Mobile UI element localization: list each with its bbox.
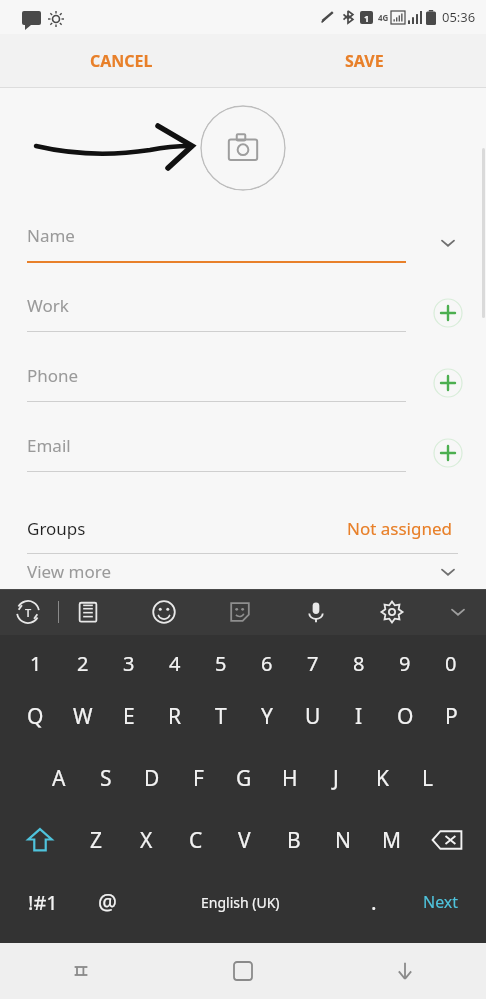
staticText: V	[238, 826, 251, 855]
button[interactable]: View more	[0, 554, 486, 589]
button[interactable]: 8	[336, 641, 382, 685]
button[interactable]: CANCEL	[0, 34, 243, 88]
button[interactable]: Groups	[0, 488, 486, 554]
button[interactable]: S	[82, 747, 129, 809]
button[interactable]: English (UK)	[136, 871, 345, 933]
button[interactable]: C	[171, 809, 220, 871]
button[interactable]: A	[35, 747, 82, 809]
button[interactable]: Phone	[0, 348, 486, 418]
button[interactable]: Stickers	[218, 590, 262, 634]
button[interactable]: H	[267, 747, 313, 809]
button[interactable]: Z	[71, 809, 121, 871]
button[interactable]: Name	[0, 208, 486, 278]
button[interactable]: Add Email	[433, 438, 463, 468]
button[interactable]: R	[152, 685, 198, 747]
staticText: Next	[423, 891, 459, 913]
button[interactable]: N	[318, 809, 367, 871]
button[interactable]: F	[175, 747, 221, 809]
staticText: 8	[353, 650, 365, 677]
button[interactable]: Y	[244, 685, 290, 747]
staticText: A	[52, 764, 66, 793]
button[interactable]: Emoji	[142, 590, 186, 634]
staticText: O	[397, 702, 414, 731]
button[interactable]: M	[367, 809, 416, 871]
button[interactable]: Backspace	[416, 809, 478, 871]
button[interactable]: Hide keyboard	[324, 943, 486, 999]
button[interactable]: 1	[12, 641, 59, 685]
button[interactable]: L	[405, 747, 451, 809]
button[interactable]: Work	[0, 278, 486, 348]
button[interactable]: E	[106, 685, 152, 747]
staticText: .	[371, 888, 377, 917]
button[interactable]: O	[382, 685, 428, 747]
staticText: SAVE	[345, 50, 384, 72]
staticText: Groups	[27, 517, 86, 540]
button[interactable]: Voice input	[294, 590, 338, 634]
button[interactable]: Collapse toolbar	[436, 590, 480, 634]
button[interactable]: Home	[162, 943, 324, 999]
button[interactable]: 0	[428, 641, 474, 685]
button[interactable]: @	[78, 871, 136, 933]
staticText: Y	[261, 702, 273, 731]
button[interactable]: Clipboard	[66, 590, 110, 634]
button[interactable]: B	[269, 809, 318, 871]
button[interactable]: D	[129, 747, 175, 809]
button[interactable]: I	[336, 685, 382, 747]
staticText: Not assigned	[347, 517, 452, 540]
staticText: CANCEL	[90, 50, 153, 72]
button[interactable]: Email	[0, 418, 486, 488]
button[interactable]: 2	[59, 641, 106, 685]
button[interactable]: Expand name	[428, 223, 468, 263]
button[interactable]: Recents	[0, 943, 162, 999]
staticText: 7	[307, 650, 319, 677]
button[interactable]: Q	[12, 685, 59, 747]
staticText: !#1	[28, 889, 58, 916]
staticText: 0	[445, 650, 457, 677]
staticText: Email	[27, 434, 71, 457]
button[interactable]: Add Phone	[433, 368, 463, 398]
button[interactable]: 7	[290, 641, 336, 685]
button[interactable]: W	[59, 685, 106, 747]
staticText: 4G	[378, 12, 389, 23]
button[interactable]: Add Work	[433, 298, 463, 328]
button[interactable]: SAVE	[243, 34, 486, 88]
button[interactable]: U	[290, 685, 336, 747]
staticText: Z	[90, 826, 103, 855]
button[interactable]: T	[198, 685, 244, 747]
button[interactable]: Translate	[6, 590, 50, 634]
button[interactable]: G	[221, 747, 267, 809]
button[interactable]: Next	[403, 871, 478, 933]
staticText: T	[25, 605, 32, 620]
staticText: I	[355, 702, 363, 731]
button[interactable]: X	[121, 809, 171, 871]
button[interactable]: V	[220, 809, 269, 871]
button[interactable]: Keyboard settings	[370, 590, 414, 634]
staticText: X	[140, 826, 153, 855]
button[interactable]: Add contact photo	[200, 105, 286, 191]
staticText: Name	[27, 224, 75, 247]
button[interactable]: !#1	[8, 871, 78, 933]
button[interactable]: J	[313, 747, 359, 809]
button[interactable]: 5	[198, 641, 244, 685]
button[interactable]: 6	[244, 641, 290, 685]
staticText: F	[193, 764, 204, 793]
staticText: 4	[169, 650, 181, 677]
staticText: E	[123, 702, 135, 731]
staticText: D	[144, 764, 160, 793]
staticText: Work	[27, 294, 69, 317]
button[interactable]: K	[359, 747, 405, 809]
button[interactable]: Shift	[8, 809, 71, 871]
button[interactable]: 4	[152, 641, 198, 685]
button[interactable]: 9	[382, 641, 428, 685]
staticText: G	[236, 764, 252, 793]
staticText: S	[100, 764, 112, 793]
button[interactable]: .	[345, 871, 403, 933]
button[interactable]: P	[428, 685, 474, 747]
staticText: L	[422, 764, 434, 793]
staticText: 6	[261, 650, 273, 677]
staticText: C	[189, 826, 203, 855]
staticText: B	[287, 826, 301, 855]
staticText: English (UK)	[201, 893, 280, 912]
button[interactable]: 3	[106, 641, 152, 685]
staticText: Q	[27, 702, 44, 731]
